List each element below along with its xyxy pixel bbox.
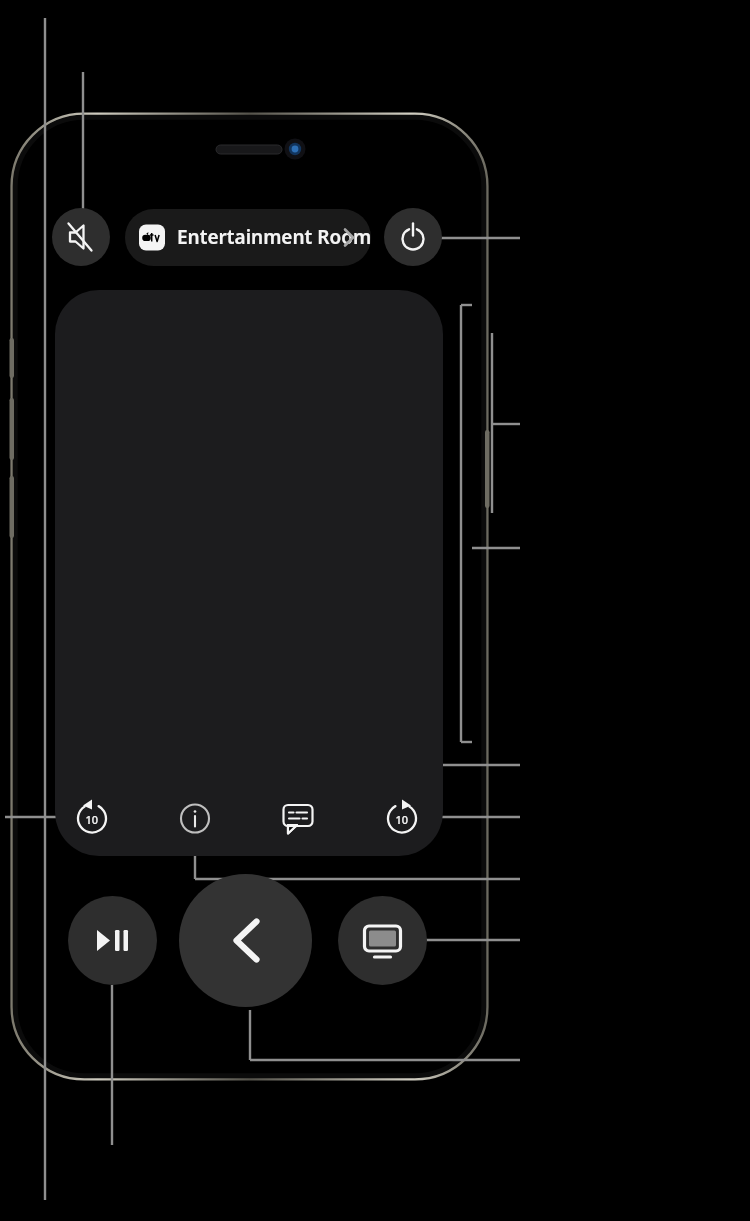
button[interactable] bbox=[125, 209, 371, 266]
button[interactable]: Power bbox=[384, 208, 442, 266]
button[interactable]: Skip back 10 seconds bbox=[69, 794, 115, 840]
button[interactable]: Back bbox=[179, 874, 312, 1007]
button[interactable]: Info bbox=[172, 794, 218, 840]
button[interactable]: Captions bbox=[275, 794, 321, 840]
button[interactable]: TV bbox=[338, 896, 427, 985]
button[interactable]: Touch surface bbox=[55, 290, 443, 856]
button[interactable]: Skip forward 10 seconds bbox=[379, 794, 425, 840]
button[interactable]: Mute bbox=[52, 208, 110, 266]
button[interactable]: Play pause bbox=[68, 896, 157, 985]
